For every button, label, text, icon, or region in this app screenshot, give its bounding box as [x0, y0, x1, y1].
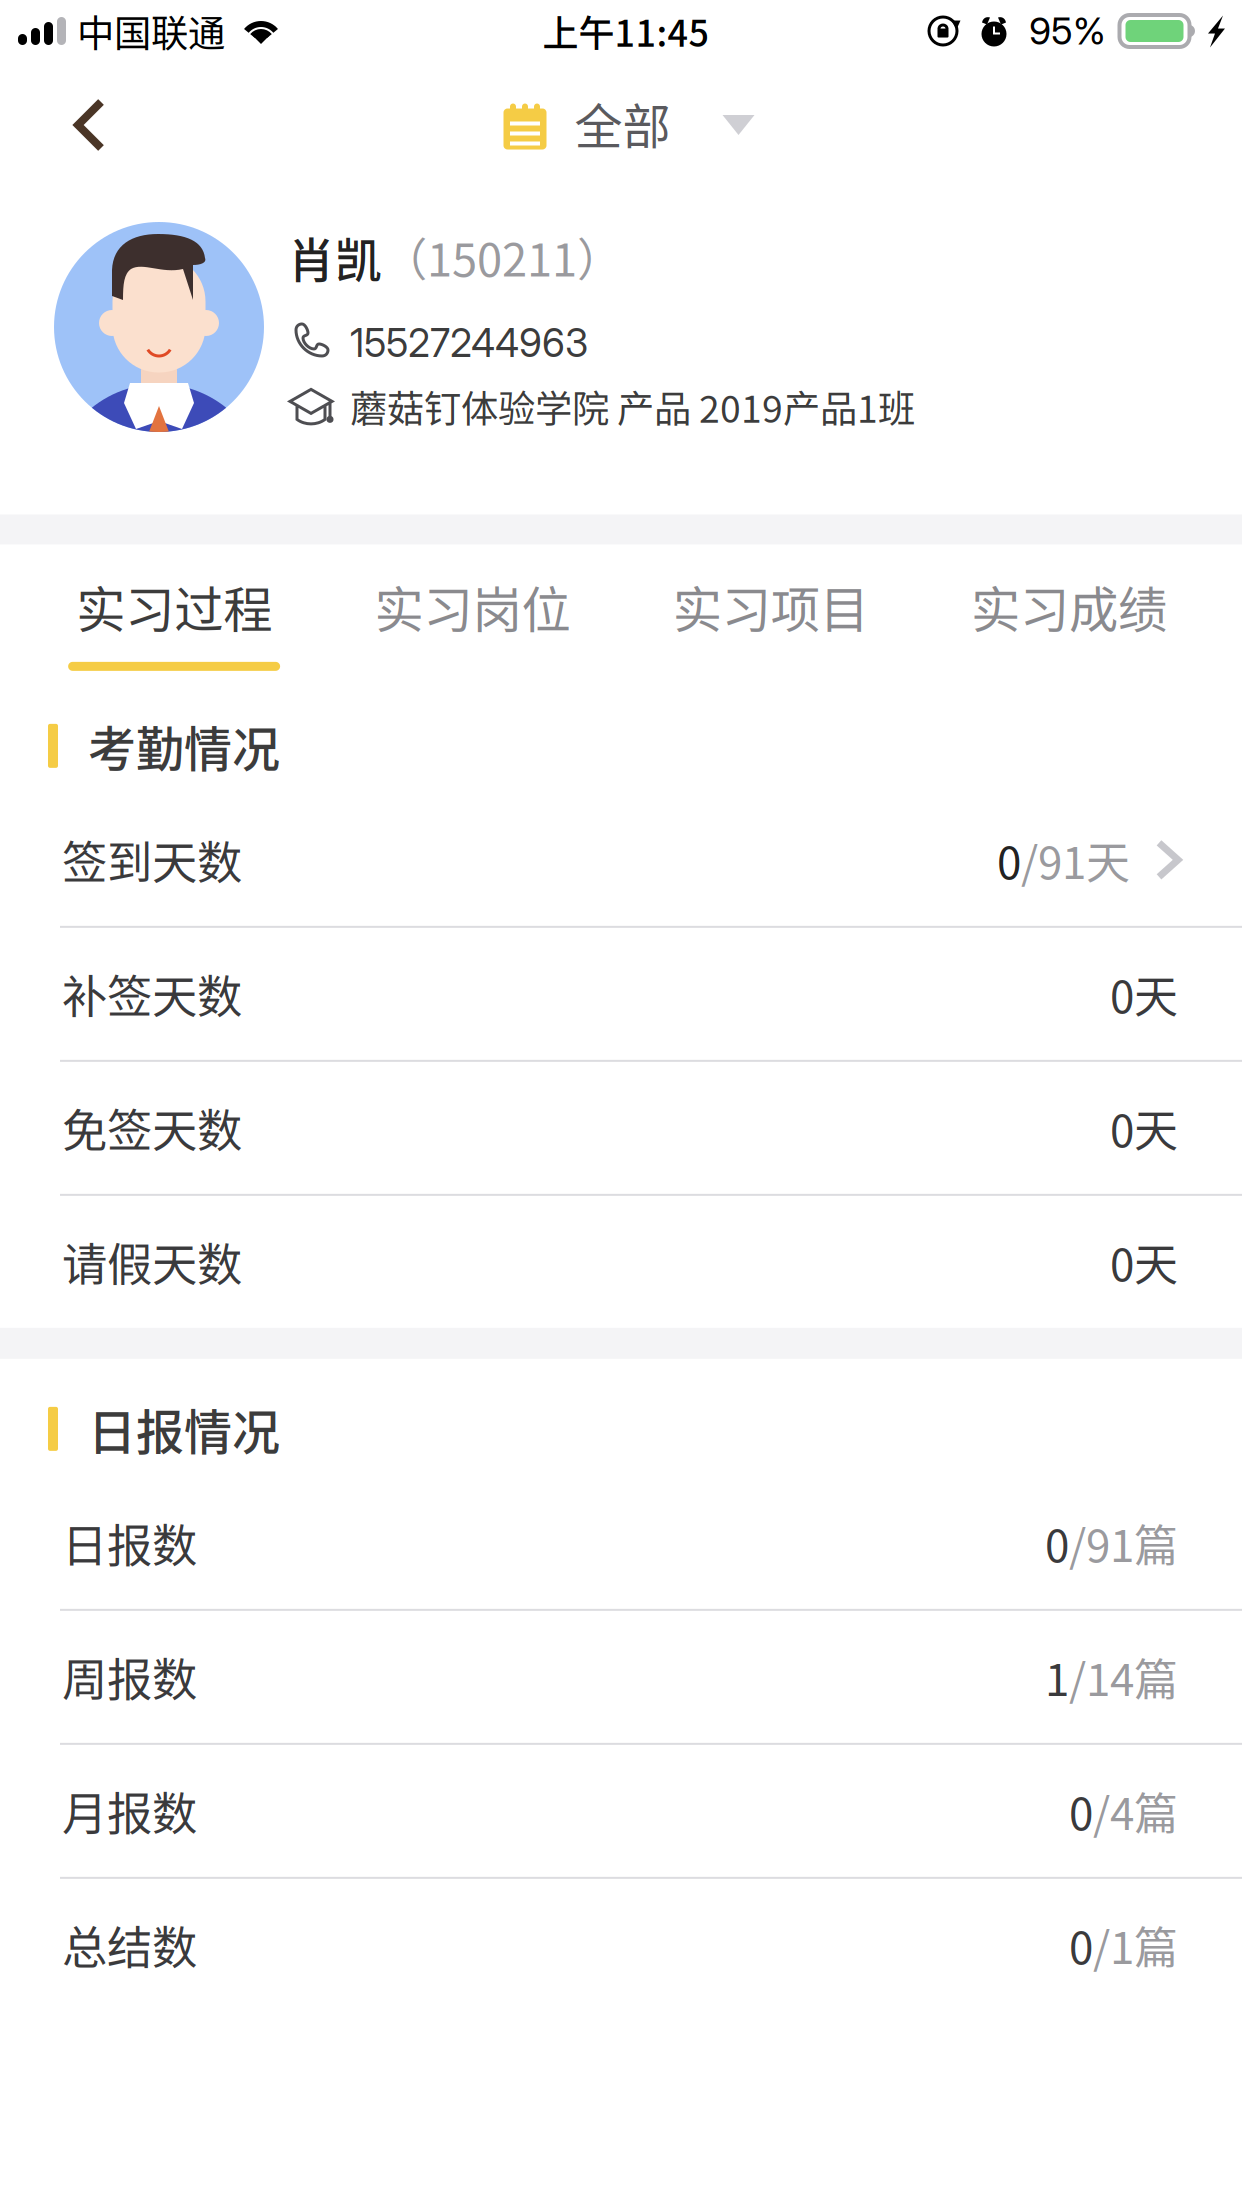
button[interactable]: 实习项目 — [621, 570, 920, 671]
staticText: （150211） — [382, 224, 622, 290]
button[interactable]: 全部 — [496, 82, 745, 152]
staticText: 实习项目 — [673, 570, 869, 642]
staticText: 总结数 — [62, 1912, 197, 1978]
button[interactable]: 请假天数 — [0, 1196, 1242, 1328]
staticText: 0 — [1069, 1779, 1093, 1843]
staticText: 全部 — [574, 88, 670, 158]
button[interactable]: 补签天数 — [0, 928, 1242, 1060]
staticText: /91天 — [1021, 828, 1130, 892]
staticText: 请假天数 — [62, 1229, 242, 1295]
staticText: 免签天数 — [62, 1095, 242, 1161]
staticText: 实习成绩 — [971, 570, 1167, 642]
staticText: /91篇 — [1069, 1511, 1178, 1575]
staticText: 1 — [1045, 1645, 1069, 1709]
staticText: 签到天数 — [62, 827, 242, 893]
staticText: 日报情况 — [88, 1394, 280, 1464]
staticText: 周报数 — [62, 1644, 197, 1710]
staticText: 蘑菇钉体验学院 产品 2019产品1班 — [350, 379, 915, 433]
button[interactable]: 实习成绩 — [920, 570, 1218, 671]
staticText: /14篇 — [1069, 1645, 1178, 1709]
button[interactable]: 实习过程 — [25, 570, 323, 671]
button[interactable]: 月报数 — [0, 1745, 1242, 1877]
staticText: 0天 — [1110, 1096, 1178, 1160]
staticText: 肖凯 — [288, 223, 382, 291]
staticText: 0 — [1045, 1511, 1069, 1575]
staticText: 实习岗位 — [374, 570, 570, 642]
staticText: 0天 — [1110, 962, 1178, 1026]
staticText: 中国联通 — [77, 4, 225, 58]
staticText: 补签天数 — [62, 961, 242, 1027]
button[interactable]: 签到天数 — [0, 794, 1242, 926]
button[interactable]: 总结数 — [0, 1879, 1242, 2011]
staticText: 0 — [1069, 1913, 1093, 1977]
staticText: 日报数 — [62, 1510, 197, 1576]
staticText: 0天 — [1110, 1230, 1178, 1294]
button[interactable]: 免签天数 — [0, 1062, 1242, 1194]
button[interactable]: 日报数 — [0, 1477, 1242, 1609]
staticText: 考勤情况 — [88, 711, 280, 781]
staticText: 实习过程 — [76, 570, 272, 642]
staticText: /4篇 — [1093, 1779, 1178, 1843]
staticText: /1篇 — [1093, 1913, 1178, 1977]
staticText: 上午11:45 — [542, 5, 709, 57]
button[interactable]: 返回 — [0, 62, 110, 172]
button[interactable]: 周报数 — [0, 1611, 1242, 1743]
staticText: 95% — [1029, 8, 1106, 54]
button[interactable]: 实习岗位 — [323, 570, 621, 671]
staticText: 0 — [997, 828, 1021, 892]
staticText: 月报数 — [62, 1778, 197, 1844]
staticText: 15527244963 — [350, 320, 588, 366]
